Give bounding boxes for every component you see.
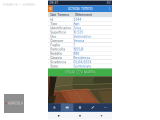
button[interactable]: Recent apps bbox=[48, 112, 69, 119]
staticText: 7 bbox=[73, 43, 75, 47]
staticText: Particella bbox=[50, 48, 65, 51]
button[interactable]: Locate bbox=[74, 103, 86, 111]
staticText: Id bbox=[50, 18, 53, 21]
staticText: Catasto bbox=[50, 56, 62, 60]
staticText: 02/04/2024 bbox=[73, 60, 91, 64]
staticText: Scheda Terreno bbox=[67, 6, 92, 11]
button[interactable]: Measure bbox=[61, 103, 74, 111]
staticText: 4G bbox=[106, 1, 110, 5]
staticText: Verona bbox=[73, 39, 84, 43]
staticText: Foglio bbox=[50, 43, 60, 47]
button[interactable]: Layers bbox=[48, 103, 61, 111]
button[interactable]: Draw bbox=[86, 103, 99, 111]
button[interactable]: Back bbox=[91, 112, 112, 119]
staticText: 10.525 bbox=[73, 31, 83, 34]
button[interactable]: Menu bbox=[48, 5, 53, 12]
staticText: Uso bbox=[50, 35, 56, 38]
staticText: 1955/B bbox=[73, 48, 83, 51]
staticText: Seminativo bbox=[73, 35, 91, 38]
button[interactable]: More options bbox=[107, 6, 112, 12]
staticText: Dati Terreno bbox=[50, 13, 69, 17]
staticText: Zona bbox=[73, 26, 81, 30]
staticText: 3344 bbox=[73, 18, 81, 21]
staticText: 09:41 bbox=[50, 1, 58, 5]
staticText: Reddito bbox=[50, 52, 62, 55]
staticText: 880 bbox=[73, 52, 79, 55]
staticText: Comune bbox=[50, 39, 63, 43]
staticText: Identificativo bbox=[50, 26, 71, 30]
staticText: FIGURA 12 — SCHEDA bbox=[3, 3, 35, 6]
staticText: Riferimenti bbox=[75, 13, 92, 17]
staticText: Scadenza bbox=[50, 60, 66, 64]
button[interactable]: More bbox=[99, 103, 112, 111]
staticText: Tipo bbox=[50, 22, 57, 26]
staticText: Stato bbox=[50, 65, 58, 68]
staticText: Residenza bbox=[73, 56, 90, 60]
button[interactable]: Home bbox=[69, 112, 91, 119]
staticText: Agri bbox=[73, 22, 79, 26]
staticText: VISUALIZZA MAPPA bbox=[65, 71, 95, 74]
staticText: AGRICOLA bbox=[8, 102, 23, 105]
staticText: Superficie bbox=[50, 31, 66, 34]
button[interactable]: VISUALIZZA MAPPA bbox=[65, 71, 95, 74]
staticText: Confermato bbox=[73, 65, 91, 68]
